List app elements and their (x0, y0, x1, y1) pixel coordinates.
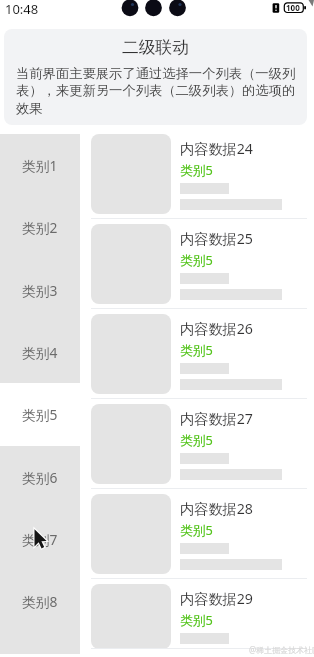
staticText: @稀土掘金技术社区 (249, 644, 314, 655)
staticText: 类别5 (22, 405, 58, 424)
button[interactable]: 类别6 (0, 446, 80, 508)
staticText: 10:48 (5, 0, 39, 18)
staticText: 类别1 (22, 156, 58, 175)
staticText: 类别8 (22, 592, 58, 611)
staticText: 内容数据25 (180, 229, 253, 248)
staticText: 内容数据28 (180, 499, 253, 518)
staticText: 内容数据24 (180, 139, 253, 158)
button[interactable]: 类别3 (0, 259, 80, 321)
staticText: 类别5 (180, 431, 213, 448)
button[interactable]: 内容数据24 (80, 129, 314, 219)
button[interactable]: 类别8 (0, 570, 80, 633)
staticText: 类别5 (180, 341, 213, 358)
staticText: 类别6 (22, 468, 58, 487)
staticText: 当前界面主要展示了通过选择一个列表（一级列表），来更新另一个列表（二级列表）的选… (16, 65, 296, 117)
staticText: 类别5 (180, 611, 213, 628)
button[interactable]: 内容数据27 (80, 399, 314, 489)
button[interactable]: 类别1 (0, 134, 80, 196)
staticText: 类别2 (22, 218, 58, 237)
staticText: 类别3 (22, 281, 58, 300)
button[interactable]: 内容数据29 (80, 579, 314, 649)
staticText: 内容数据29 (180, 589, 253, 608)
staticText: 类别5 (180, 161, 213, 178)
staticText: 类别5 (180, 521, 213, 538)
button[interactable]: 类别5 (0, 383, 80, 446)
staticText: 二级联动 (4, 37, 307, 58)
staticText: 内容数据27 (180, 409, 253, 428)
button[interactable]: 类别2 (0, 196, 80, 259)
staticText: 100 (286, 2, 300, 13)
button[interactable]: 内容数据26 (80, 309, 314, 399)
button[interactable]: 内容数据25 (80, 219, 314, 309)
staticText: 类别7 (22, 530, 58, 549)
staticText: 类别4 (22, 343, 58, 362)
button[interactable]: 类别7 (0, 508, 80, 570)
button[interactable]: 内容数据28 (80, 489, 314, 579)
button[interactable]: 类别4 (0, 321, 80, 383)
staticText: 类别5 (180, 251, 213, 268)
staticText: 内容数据26 (180, 319, 253, 338)
